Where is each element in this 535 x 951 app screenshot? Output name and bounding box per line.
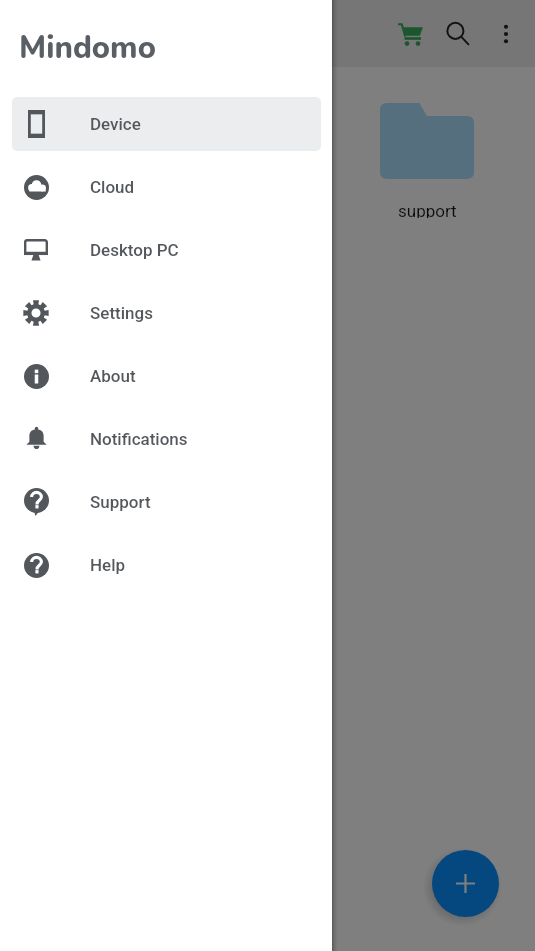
button[interactable]: Cloud (12, 160, 321, 214)
button[interactable]: Settings (12, 286, 321, 340)
button[interactable]: Add (432, 850, 499, 917)
staticText: Desktop PC (90, 240, 179, 260)
staticText: Settings (90, 303, 153, 323)
staticText: Device (90, 114, 141, 134)
staticText: Notifications (90, 429, 188, 449)
button[interactable]: Desktop PC (12, 223, 321, 277)
staticText: Cloud (90, 177, 135, 197)
button[interactable]: support (380, 103, 474, 218)
button[interactable]: Shop (386, 10, 434, 58)
button[interactable]: Notifications (12, 412, 321, 466)
staticText: Help (90, 555, 126, 575)
button[interactable]: About (12, 349, 321, 403)
button[interactable]: Search (434, 10, 482, 58)
staticText: Support (90, 492, 151, 512)
button[interactable]: Help (12, 538, 321, 592)
staticText: About (90, 366, 136, 386)
button[interactable]: More options (482, 10, 530, 58)
button[interactable]: Device (12, 97, 321, 151)
staticText: support (398, 201, 457, 218)
staticText: Mindomo (19, 27, 156, 69)
button[interactable]: Support (12, 475, 321, 529)
